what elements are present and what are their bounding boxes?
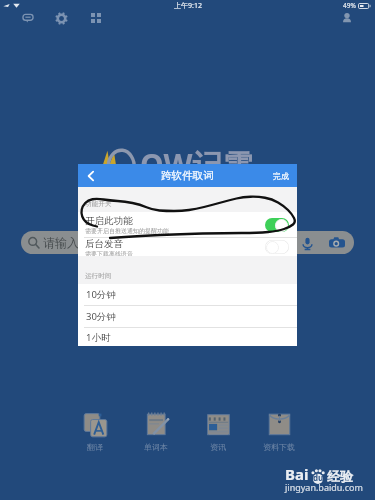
staticText: 49% <box>343 1 356 10</box>
button[interactable]: 开启此功能 <box>78 212 297 237</box>
staticText: 功能开关 <box>85 200 112 208</box>
staticText: Bai <box>285 464 309 484</box>
button[interactable]: Account <box>337 8 357 28</box>
button[interactable] <box>265 218 289 232</box>
staticText: 翻译 <box>87 442 103 452</box>
staticText: 跨软件取词 <box>161 169 214 182</box>
button[interactable] <box>265 240 289 254</box>
button[interactable]: 资讯 <box>194 412 242 452</box>
button[interactable]: 请输入要查询的单词 <box>21 231 354 254</box>
button[interactable]: Back <box>78 164 104 187</box>
button[interactable]: 资料下载 <box>255 412 303 452</box>
button[interactable]: 30分钟 <box>78 306 297 327</box>
staticText: 30分钟 <box>86 310 116 323</box>
button[interactable]: Apps <box>86 8 106 28</box>
button[interactable]: Camera search <box>328 234 346 252</box>
staticText: 开启此功能 <box>85 215 133 227</box>
staticText: QW记需 <box>140 144 253 185</box>
staticText: 10分钟 <box>86 288 116 301</box>
staticText: jingyan.baidu.com <box>285 481 363 493</box>
staticText: 运行时间 <box>85 272 112 280</box>
button[interactable]: 10分钟 <box>78 284 297 305</box>
staticText: 上午9:12 <box>174 1 202 11</box>
staticText: 1小时 <box>86 331 111 344</box>
staticText: 资讯 <box>210 442 226 452</box>
button[interactable]: 单词本 <box>132 412 180 452</box>
staticText: 经验 <box>327 468 353 484</box>
staticText: 单词本 <box>144 442 168 452</box>
staticText: 完成 <box>273 171 289 181</box>
button[interactable]: Settings <box>51 8 71 28</box>
button[interactable]: Feedback <box>18 8 38 28</box>
staticText: 需要开启自推送通知的提醒功能 <box>85 227 169 235</box>
staticText: du <box>313 472 324 483</box>
staticText: 需要下载离线语音 <box>85 250 133 256</box>
staticText: 后台发音 <box>85 238 123 250</box>
button[interactable]: 1小时 <box>78 328 297 346</box>
staticText: 资料下载 <box>263 442 295 452</box>
button[interactable]: 完成 <box>273 164 289 187</box>
staticText: 请输入要查询的单词 <box>43 235 151 250</box>
button[interactable]: Voice search <box>299 235 315 251</box>
button[interactable]: 翻译 <box>71 412 119 452</box>
button[interactable]: 后台发音 <box>78 238 297 256</box>
